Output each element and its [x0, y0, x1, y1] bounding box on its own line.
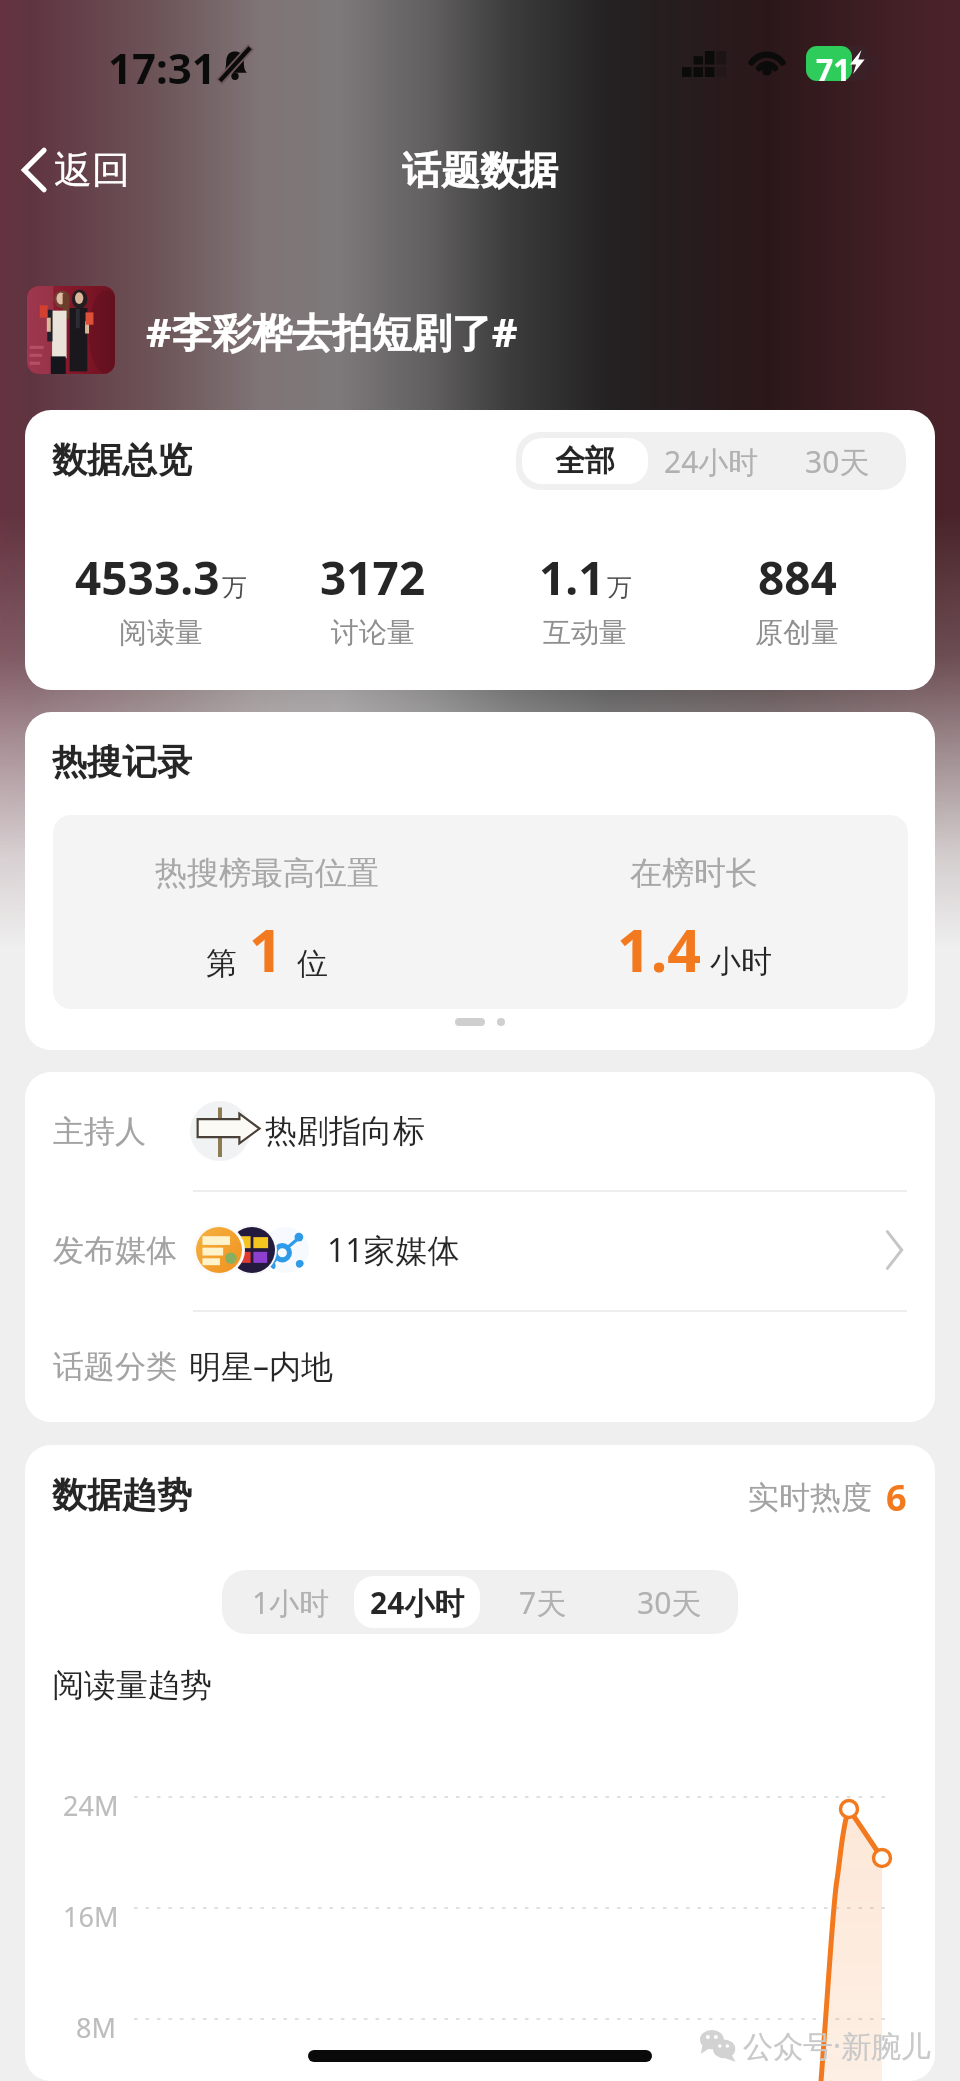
staticText: 24M — [63, 1787, 119, 1824]
staticText: 万 — [607, 572, 632, 603]
staticText: 阅读量 — [119, 615, 203, 650]
staticText: 24小时 — [370, 1582, 465, 1623]
staticText: 24小时 — [664, 441, 759, 482]
staticText: 全部 — [555, 442, 615, 480]
staticText: 在榜时长 — [630, 853, 758, 893]
staticText: 小时 — [710, 942, 772, 981]
staticText: 6 — [886, 1473, 907, 1522]
staticText: 实时热度 — [748, 1478, 872, 1517]
staticText: 4533.3 — [75, 546, 220, 609]
staticText: #李彩桦去拍短剧了# — [146, 304, 518, 359]
staticText: 话题分类 — [53, 1347, 177, 1386]
staticText: 第 — [206, 944, 237, 983]
staticText: 万 — [222, 572, 247, 603]
staticText: 数据总览 — [52, 438, 192, 482]
staticText: 17:31 — [108, 39, 216, 96]
staticText: 热搜记录 — [52, 740, 192, 784]
button[interactable]: 发布媒体 — [25, 1190, 935, 1310]
button[interactable]: 7天 — [480, 1576, 606, 1628]
button[interactable]: 返回 — [4, 134, 148, 206]
button[interactable]: 30天 — [606, 1576, 732, 1628]
staticText: 热剧指向标 — [265, 1111, 425, 1151]
staticText: 阅读量趋势 — [52, 1665, 212, 1705]
staticText: 原创量 — [755, 615, 839, 650]
staticText: 明星–内地 — [189, 1344, 334, 1388]
button[interactable]: 30天 — [774, 438, 900, 484]
staticText: 返回 — [54, 146, 130, 194]
staticText: 主持人 — [53, 1112, 146, 1151]
staticText: 热搜榜最高位置 — [155, 853, 379, 893]
staticText: 71 — [816, 49, 851, 90]
staticText: 30天 — [637, 1582, 702, 1623]
staticText: 讨论量 — [331, 615, 415, 650]
staticText: 1.1 — [539, 546, 605, 609]
staticText: 884 — [758, 546, 837, 609]
staticText: 数据趋势 — [52, 1473, 192, 1517]
staticText: 1 — [249, 909, 283, 989]
button[interactable]: 1小时 — [228, 1576, 354, 1628]
staticText: 1小时 — [252, 1582, 330, 1623]
staticText: 公众号·新腕儿 — [743, 2025, 932, 2066]
staticText: 1.4 — [617, 909, 702, 989]
staticText: 位 — [297, 944, 328, 983]
staticText: 发布媒体 — [53, 1231, 177, 1270]
staticText: 8M — [76, 2009, 116, 2046]
staticText: 11家媒体 — [327, 1228, 460, 1272]
button[interactable]: 24小时 — [354, 1576, 480, 1628]
staticText: 互动量 — [543, 615, 627, 650]
staticText: 16M — [63, 1898, 119, 1935]
button[interactable]: 全部 — [522, 438, 648, 484]
staticText: 3172 — [320, 546, 426, 609]
staticText: 7天 — [519, 1582, 567, 1623]
staticText: 话题数据 — [402, 146, 558, 195]
button[interactable]: 24小时 — [648, 438, 774, 484]
other: More media — [883, 1230, 905, 1270]
staticText: 30天 — [805, 441, 870, 482]
